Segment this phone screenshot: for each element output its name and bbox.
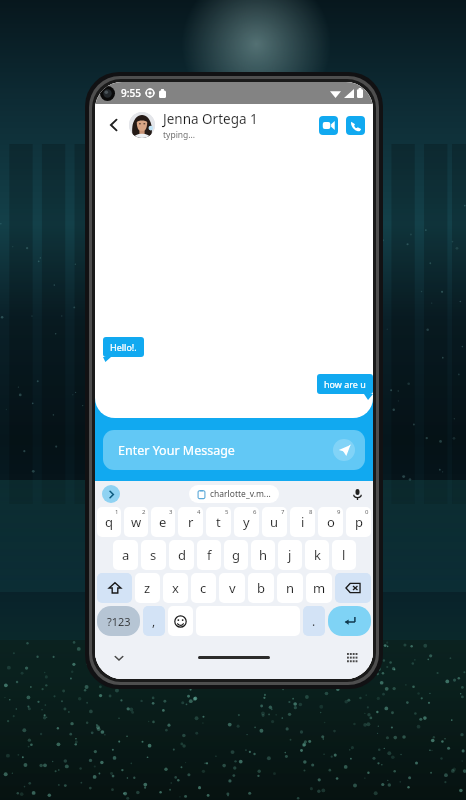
staticText: j bbox=[288, 546, 292, 564]
staticText: Jenna Ortega 1 bbox=[163, 110, 258, 128]
button[interactable]: q bbox=[97, 507, 121, 537]
button[interactable]: j bbox=[278, 540, 302, 570]
staticText: h bbox=[259, 546, 268, 564]
staticText: q bbox=[105, 513, 113, 531]
staticText: u bbox=[270, 513, 279, 531]
staticText: c bbox=[200, 579, 207, 597]
button[interactable]: t bbox=[206, 507, 231, 537]
staticText: f bbox=[207, 546, 212, 564]
button[interactable]: d bbox=[169, 540, 194, 570]
button[interactable]: e bbox=[151, 507, 175, 537]
staticText: r bbox=[188, 513, 194, 531]
button[interactable]: z bbox=[135, 573, 160, 603]
staticText: p bbox=[355, 513, 363, 531]
button[interactable]: charlotte_v.m... bbox=[189, 485, 279, 503]
staticText: 6 bbox=[253, 508, 257, 516]
button[interactable]: p bbox=[346, 507, 371, 537]
button[interactable]: r bbox=[178, 507, 203, 537]
button[interactable]: g bbox=[224, 540, 248, 570]
staticText: y bbox=[243, 513, 250, 531]
button[interactable]: Voice call bbox=[346, 116, 365, 135]
staticText: g bbox=[232, 546, 240, 564]
staticText: . bbox=[312, 613, 316, 629]
button[interactable]: f bbox=[197, 540, 221, 570]
button[interactable]: w bbox=[124, 507, 148, 537]
button[interactable]: . bbox=[303, 606, 325, 636]
button[interactable]: Send bbox=[333, 439, 355, 461]
staticText: b bbox=[257, 579, 265, 597]
button[interactable]: x bbox=[163, 573, 188, 603]
staticText: 2 bbox=[142, 508, 146, 516]
button[interactable]: Backspace bbox=[335, 573, 371, 603]
staticText: a bbox=[122, 546, 130, 564]
staticText: n bbox=[286, 579, 295, 597]
staticText: m bbox=[313, 579, 326, 597]
button[interactable]: Profile picture bbox=[129, 112, 155, 138]
button[interactable]: c bbox=[191, 573, 216, 603]
button[interactable]: ?123 bbox=[97, 606, 140, 636]
staticText: i bbox=[301, 513, 305, 531]
button[interactable]: n bbox=[277, 573, 303, 603]
button[interactable]: how are u bbox=[317, 374, 373, 394]
staticText: 8 bbox=[309, 508, 313, 516]
staticText: v bbox=[229, 579, 236, 597]
staticText: o bbox=[327, 513, 335, 531]
staticText: how are u bbox=[324, 378, 366, 390]
button[interactable]: b bbox=[248, 573, 274, 603]
staticText: e bbox=[159, 513, 167, 531]
button[interactable]: y bbox=[234, 507, 259, 537]
staticText: 5 bbox=[225, 508, 229, 516]
staticText: Hello!. bbox=[110, 341, 137, 353]
staticText: 1 bbox=[115, 508, 119, 516]
staticText: d bbox=[178, 546, 186, 564]
button[interactable]: v bbox=[219, 573, 245, 603]
button[interactable]: h bbox=[251, 540, 275, 570]
button[interactable]: l bbox=[332, 540, 356, 570]
staticText: 3 bbox=[169, 508, 173, 516]
button[interactable]: Expand toolbar bbox=[102, 485, 120, 503]
staticText: w bbox=[131, 513, 142, 531]
button[interactable]: Shift bbox=[97, 573, 132, 603]
staticText: ?123 bbox=[107, 614, 131, 629]
button[interactable]: s bbox=[141, 540, 166, 570]
button[interactable]: Back bbox=[103, 114, 125, 136]
staticText: x bbox=[172, 579, 179, 597]
staticText: 4 bbox=[197, 508, 201, 516]
button[interactable]: m bbox=[306, 573, 332, 603]
button[interactable]: a bbox=[113, 540, 138, 570]
button[interactable]: Enter bbox=[328, 606, 371, 636]
button[interactable]: o bbox=[318, 507, 343, 537]
button[interactable]: k bbox=[305, 540, 329, 570]
staticText: 0 bbox=[365, 508, 369, 516]
button[interactable]: Enter Your Message bbox=[103, 430, 365, 470]
staticText: 9:55 bbox=[121, 86, 141, 100]
button[interactable]: Change keyboard bbox=[345, 651, 359, 665]
button[interactable]: Hide keyboard bbox=[111, 650, 127, 666]
button[interactable]: Hello!. bbox=[103, 337, 144, 357]
staticText: , bbox=[152, 613, 156, 629]
staticText: z bbox=[144, 579, 151, 597]
staticText: typing... bbox=[163, 129, 196, 141]
staticText: charlotte_v.m... bbox=[210, 488, 271, 500]
button[interactable]: , bbox=[143, 606, 165, 636]
button[interactable]: u bbox=[262, 507, 287, 537]
staticText: 7 bbox=[281, 508, 285, 516]
staticText: t bbox=[216, 513, 221, 531]
button[interactable]: i bbox=[290, 507, 315, 537]
staticText: l bbox=[342, 546, 346, 564]
staticText: s bbox=[150, 546, 157, 564]
button[interactable]: Emoji bbox=[168, 606, 193, 636]
staticText: Enter Your Message bbox=[118, 442, 235, 459]
button[interactable]: Video call bbox=[319, 116, 338, 135]
staticText: k bbox=[314, 546, 321, 564]
button[interactable]: Voice input bbox=[348, 485, 366, 503]
staticText: 9 bbox=[337, 508, 341, 516]
